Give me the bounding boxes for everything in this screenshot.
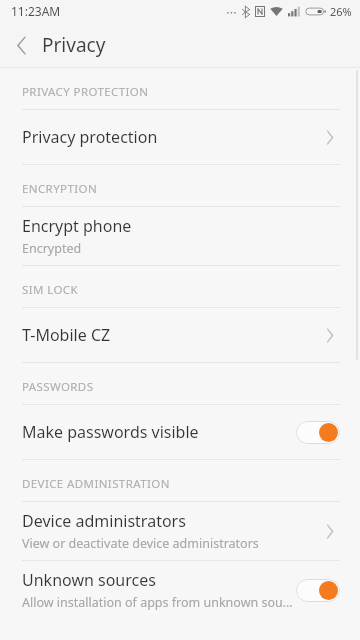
staticText: ENCRYPTION	[22, 181, 98, 197]
staticText: T-Mobile CZ	[22, 324, 111, 346]
staticText: Privacy protection	[22, 126, 158, 148]
button[interactable]: Back	[0, 22, 42, 68]
button[interactable]: Make passwords visible	[0, 405, 360, 459]
staticText: View or deactivate device administrators	[22, 535, 259, 552]
button[interactable]: Encrypt phone	[0, 207, 360, 265]
staticText: 11:23AM	[11, 3, 61, 19]
staticText: Unknown sources	[22, 569, 156, 591]
staticText: Make passwords visible	[22, 421, 199, 443]
button[interactable]: T-Mobile CZ	[0, 308, 360, 362]
button[interactable]: Device administrators	[0, 502, 360, 560]
staticText: Allow installation of apps from unknown …	[22, 594, 296, 611]
staticText: Encrypted	[22, 240, 82, 257]
staticText: Encrypt phone	[22, 215, 132, 237]
staticText: PASSWORDS	[22, 379, 94, 395]
staticText: DEVICE ADMINISTRATION	[22, 476, 170, 492]
button[interactable]: Unknown sources	[0, 561, 360, 619]
button[interactable]: Toggle on	[296, 579, 340, 602]
staticText: Privacy	[42, 32, 106, 58]
staticText: 26%	[330, 4, 352, 19]
staticText: PRIVACY PROTECTION	[22, 84, 149, 100]
staticText: Device administrators	[22, 510, 186, 532]
button[interactable]: Privacy protection	[0, 110, 360, 164]
staticText: SIM LOCK	[22, 282, 78, 298]
button[interactable]: Toggle on	[296, 421, 340, 444]
